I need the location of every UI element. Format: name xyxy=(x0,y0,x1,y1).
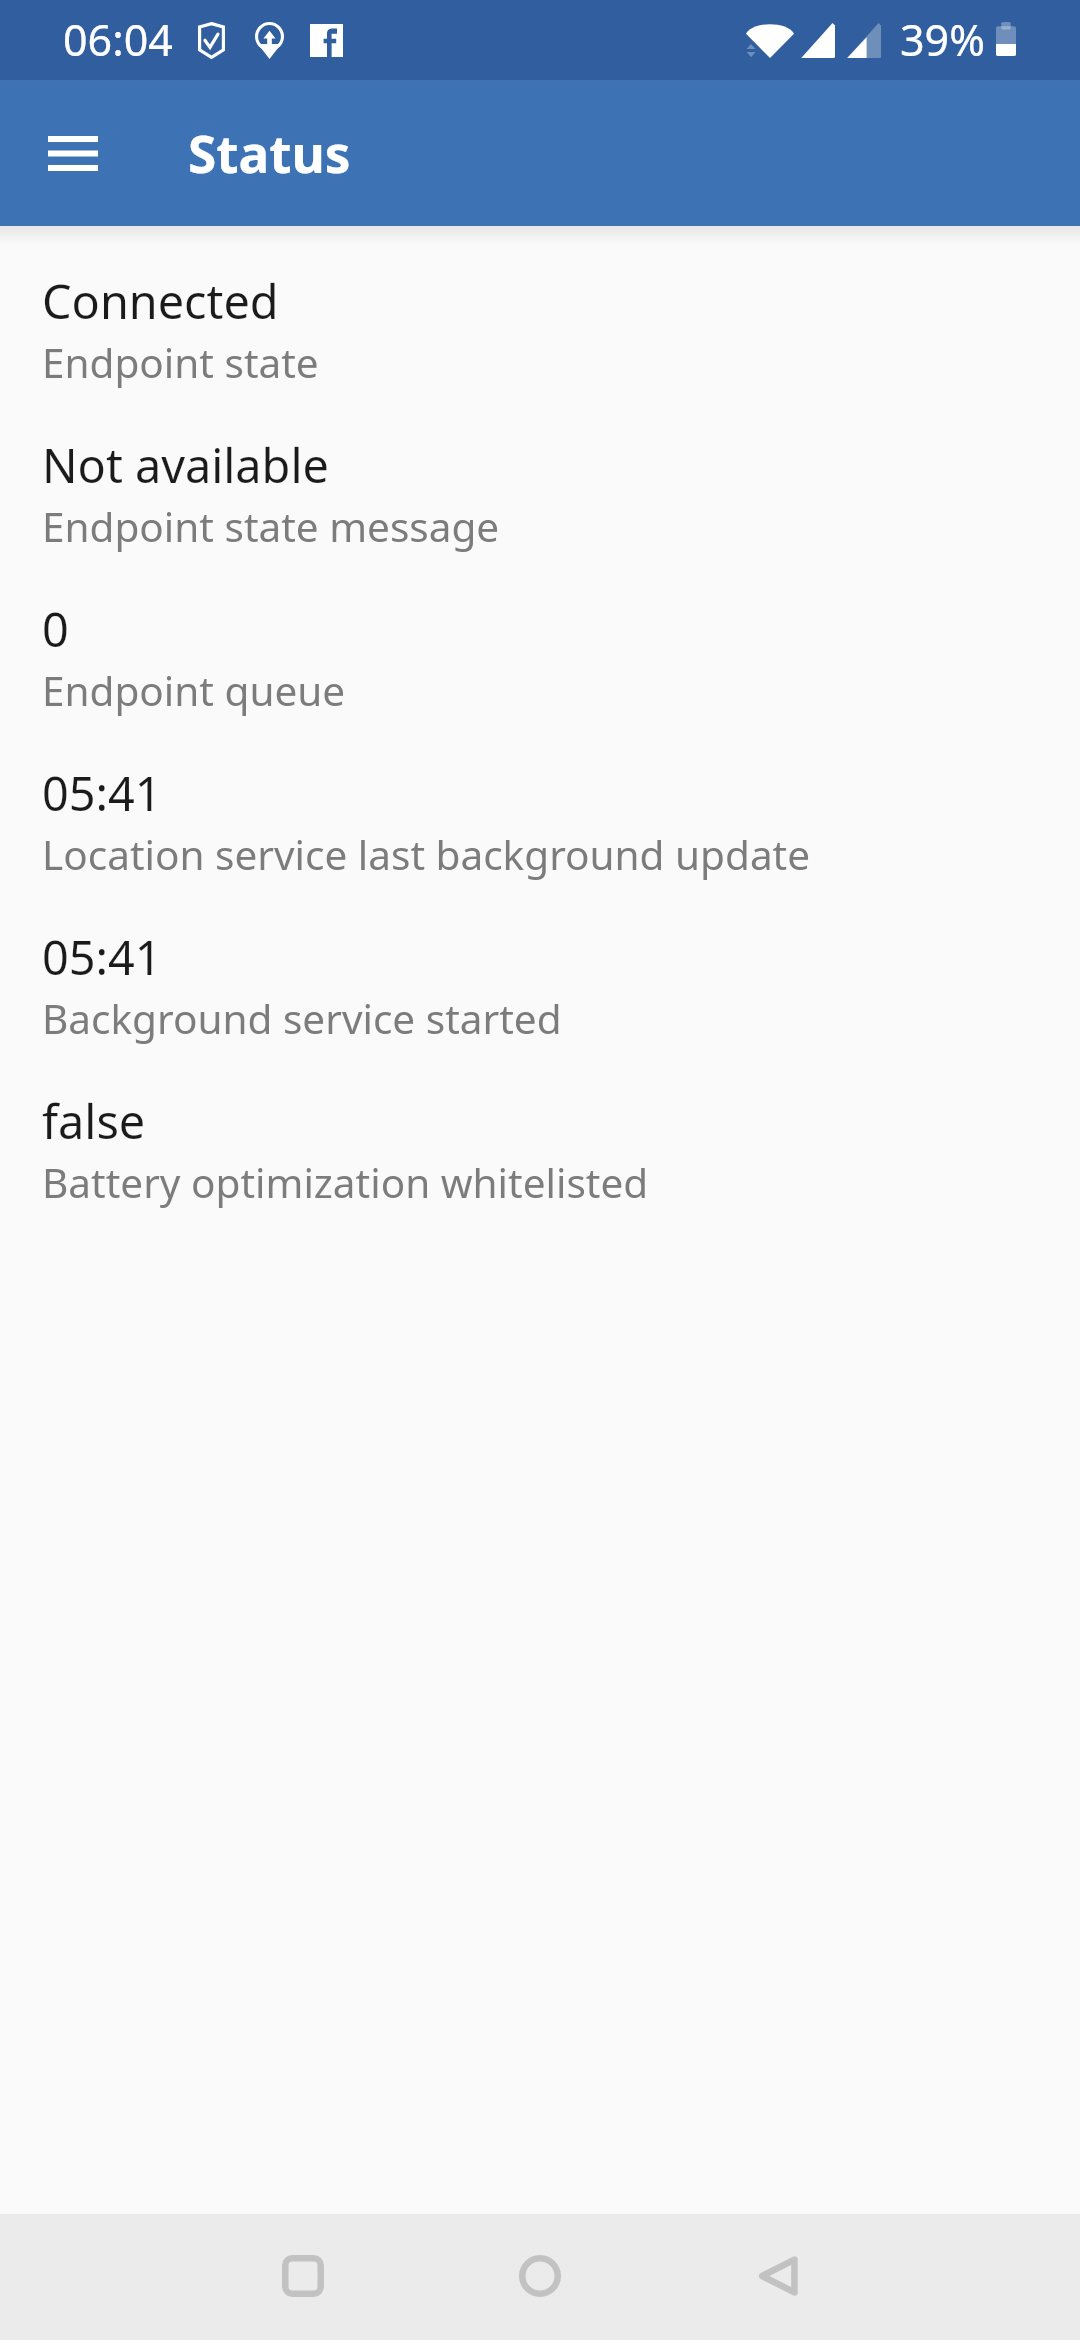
button[interactable]: Recent apps xyxy=(248,2221,358,2331)
button[interactable]: Not available xyxy=(0,419,1080,568)
staticText: false xyxy=(42,1089,146,1153)
staticText: Endpoint state xyxy=(42,335,319,390)
staticText: Location service last background update xyxy=(42,827,811,882)
staticText: Battery optimization whitelisted xyxy=(42,1155,649,1210)
button[interactable]: Home xyxy=(485,2221,595,2331)
staticText: 05:41 xyxy=(42,925,162,989)
staticText: Not available xyxy=(42,433,329,497)
staticText: 0 xyxy=(42,597,69,661)
staticText: Endpoint state message xyxy=(42,499,500,554)
button[interactable]: 0 xyxy=(0,583,1080,732)
staticText: Connected xyxy=(42,269,279,333)
button[interactable]: Open navigation drawer xyxy=(23,97,123,209)
staticText: Background service started xyxy=(42,991,562,1046)
staticText: 06:04 xyxy=(63,10,173,69)
button[interactable]: 05:41 xyxy=(0,747,1080,896)
staticText: Status xyxy=(188,118,351,188)
staticText: 39% xyxy=(900,10,985,69)
button[interactable]: Connected xyxy=(0,255,1080,404)
button[interactable]: false xyxy=(0,1075,1080,1224)
button[interactable]: 05:41 xyxy=(0,911,1080,1060)
staticText: 05:41 xyxy=(42,761,162,825)
button[interactable]: Back xyxy=(723,2221,833,2331)
staticText: Endpoint queue xyxy=(42,663,346,718)
